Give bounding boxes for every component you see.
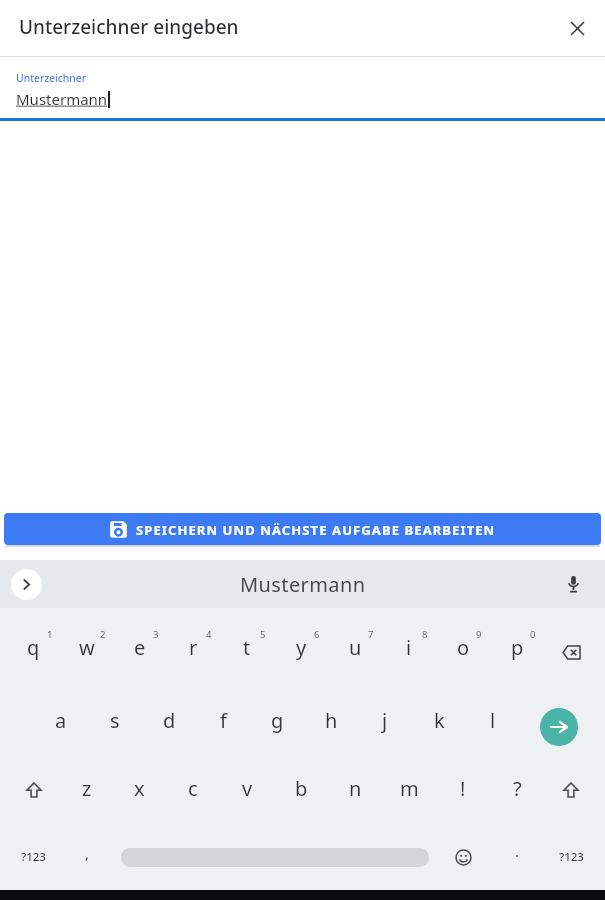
staticText: o [457, 634, 470, 661]
staticText: 6 [314, 628, 320, 641]
staticText: 3 [153, 628, 159, 641]
button[interactable]: o [436, 616, 490, 688]
staticText: v [242, 775, 253, 802]
staticText: k [434, 707, 445, 734]
staticText: 7 [368, 628, 374, 641]
button[interactable]: p [490, 616, 544, 688]
staticText: m [400, 775, 419, 802]
button[interactable]: b [274, 756, 328, 824]
button[interactable]: d [142, 688, 196, 756]
button[interactable]: q [7, 616, 60, 688]
staticText: ! [460, 775, 466, 802]
staticText: f [220, 707, 227, 734]
staticText: y [296, 634, 307, 661]
staticText: 4 [206, 628, 212, 641]
staticText: Unterzeichner eingeben [19, 14, 239, 40]
staticText: c [188, 775, 198, 802]
button[interactable] [520, 688, 598, 756]
button[interactable]: c [166, 756, 220, 824]
button[interactable]: s [88, 688, 142, 756]
button[interactable]: a [34, 688, 88, 756]
button[interactable] [11, 569, 42, 600]
staticText: b [295, 775, 308, 802]
staticText: u [349, 634, 362, 661]
staticText: z [82, 775, 92, 802]
button[interactable]: j [358, 688, 412, 756]
button[interactable]: w [60, 616, 113, 688]
staticText: t [243, 634, 251, 661]
staticText: ?123 [21, 849, 46, 865]
button[interactable]: ? [490, 756, 544, 824]
button[interactable]: m [382, 756, 436, 824]
staticText: i [406, 634, 412, 661]
staticText: w [79, 634, 95, 661]
staticText: g [271, 707, 284, 734]
staticText: x [134, 775, 145, 802]
button[interactable]: Mustermann [240, 571, 366, 598]
staticText: 1 [47, 628, 53, 641]
button[interactable]: n [328, 756, 382, 824]
staticText: · [515, 845, 520, 865]
button[interactable] [557, 8, 597, 48]
button[interactable]: t [220, 616, 274, 688]
button[interactable]: v [220, 756, 274, 824]
staticText: p [511, 634, 524, 661]
staticText: j [382, 707, 388, 734]
staticText: n [349, 775, 362, 802]
staticText: Unterzeichner [16, 71, 87, 85]
button[interactable] [7, 756, 60, 824]
staticText: d [163, 707, 176, 734]
staticText: 9 [476, 628, 482, 641]
button[interactable] [544, 756, 598, 824]
button[interactable] [436, 824, 490, 890]
staticText: , [85, 843, 90, 863]
button[interactable]: g [250, 688, 304, 756]
button[interactable] [557, 568, 589, 600]
button[interactable]: i [382, 616, 436, 688]
button[interactable]: h [304, 688, 358, 756]
button[interactable]: f [196, 688, 250, 756]
staticText: SPEICHERN UND NÄCHSTE AUFGABE BEARBEITEN [136, 521, 496, 539]
staticText: 5 [260, 628, 266, 641]
staticText: r [189, 634, 198, 661]
button[interactable]: u [328, 616, 382, 688]
button[interactable]: z [60, 756, 113, 824]
staticText: h [325, 707, 338, 734]
button[interactable]: x [113, 756, 166, 824]
staticText: 0 [530, 628, 536, 641]
button[interactable]: l [466, 688, 520, 756]
button[interactable] [544, 616, 598, 688]
button[interactable]: · [490, 824, 544, 890]
staticText: 2 [100, 628, 106, 641]
staticText: l [490, 707, 496, 734]
staticText: q [27, 634, 40, 661]
button[interactable]: ?123 [7, 824, 60, 890]
button[interactable]: k [412, 688, 466, 756]
button[interactable]: , [60, 824, 114, 890]
button[interactable]: ! [436, 756, 490, 824]
staticText: a [55, 707, 67, 734]
staticText: s [110, 707, 120, 734]
staticText: ? [513, 775, 522, 802]
staticText: 8 [422, 628, 428, 641]
staticText: ?123 [559, 849, 584, 865]
button[interactable]: SPEICHERN UND NÄCHSTE AUFGABE BEARBEITEN [4, 513, 601, 545]
staticText: Mustermann [16, 89, 108, 109]
button[interactable]: ?123 [544, 824, 598, 890]
button[interactable] [121, 824, 429, 890]
button[interactable]: r [166, 616, 220, 688]
button[interactable]: y [274, 616, 328, 688]
button[interactable]: e [113, 616, 166, 688]
staticText: e [134, 634, 146, 661]
